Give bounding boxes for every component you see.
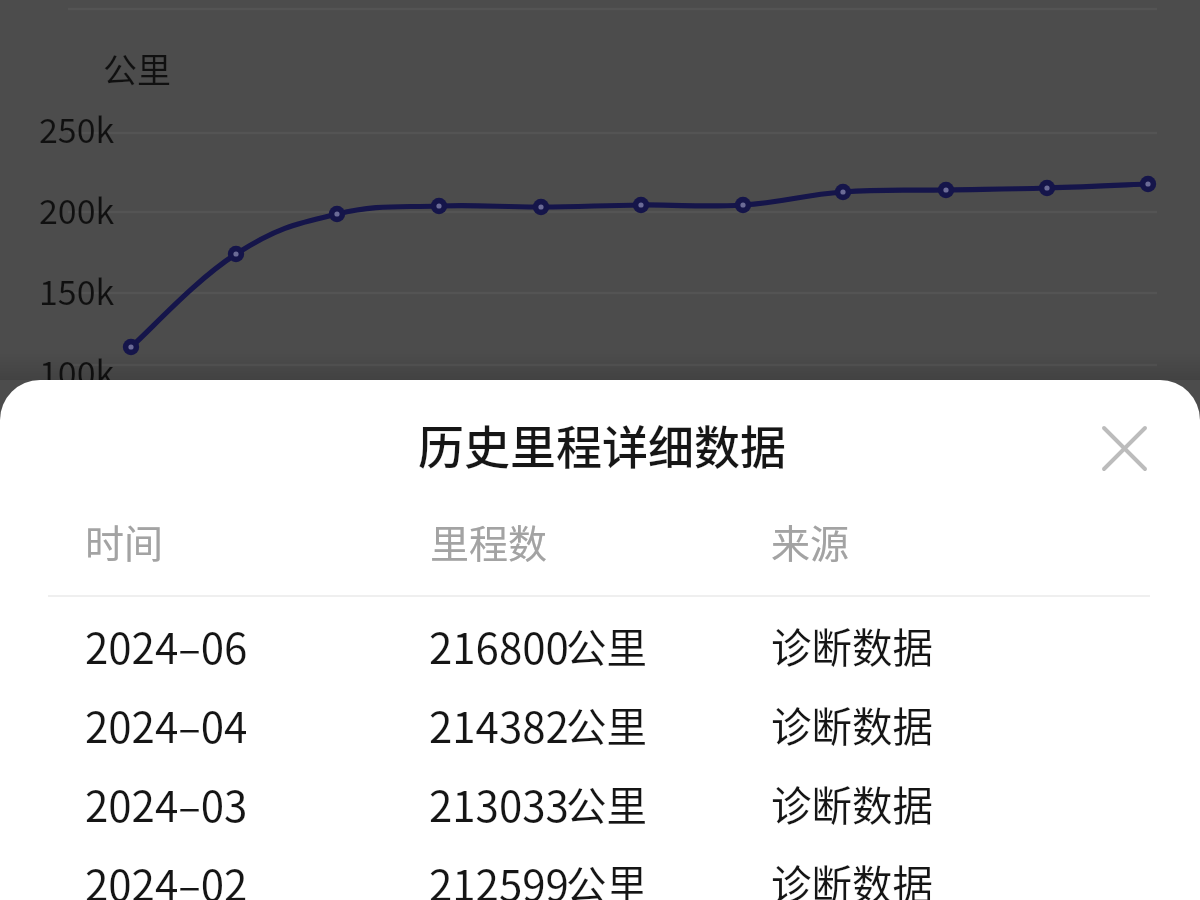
- staticText: 诊断数据: [771, 616, 933, 675]
- staticText: 公里: [566, 774, 647, 833]
- staticText: 2024–03: [85, 773, 248, 834]
- staticText: 诊断数据: [771, 853, 933, 900]
- staticText: 214382: [429, 694, 569, 755]
- staticText: 150k: [39, 266, 115, 315]
- staticText: 时间: [85, 513, 164, 569]
- staticText: 公里: [566, 616, 647, 675]
- staticText: 2024–06: [85, 615, 248, 676]
- staticText: 来源: [771, 513, 850, 569]
- staticText: 100k: [39, 347, 115, 396]
- staticText: 公里: [103, 44, 171, 93]
- staticText: 里程数: [430, 513, 548, 569]
- staticText: 公里: [566, 853, 647, 900]
- staticText: 历史里程详细数据: [418, 411, 786, 478]
- staticText: 2024–02: [85, 852, 248, 900]
- staticText: 216800: [429, 615, 569, 676]
- staticText: 212599: [429, 852, 569, 900]
- staticText: 2024–04: [85, 694, 248, 755]
- staticText: 诊断数据: [771, 695, 933, 754]
- staticText: 诊断数据: [771, 774, 933, 833]
- staticText: 213033: [429, 773, 569, 834]
- staticText: 250k: [39, 104, 115, 153]
- staticText: 200k: [39, 185, 115, 234]
- button[interactable]: Close: [1093, 417, 1155, 479]
- button[interactable]: 2024–06: [0, 615, 1200, 694]
- staticText: 公里: [566, 695, 647, 754]
- button[interactable]: 2024–04: [0, 694, 1200, 773]
- button[interactable]: 2024–03: [0, 773, 1200, 852]
- button[interactable]: 2024–02: [0, 852, 1200, 900]
